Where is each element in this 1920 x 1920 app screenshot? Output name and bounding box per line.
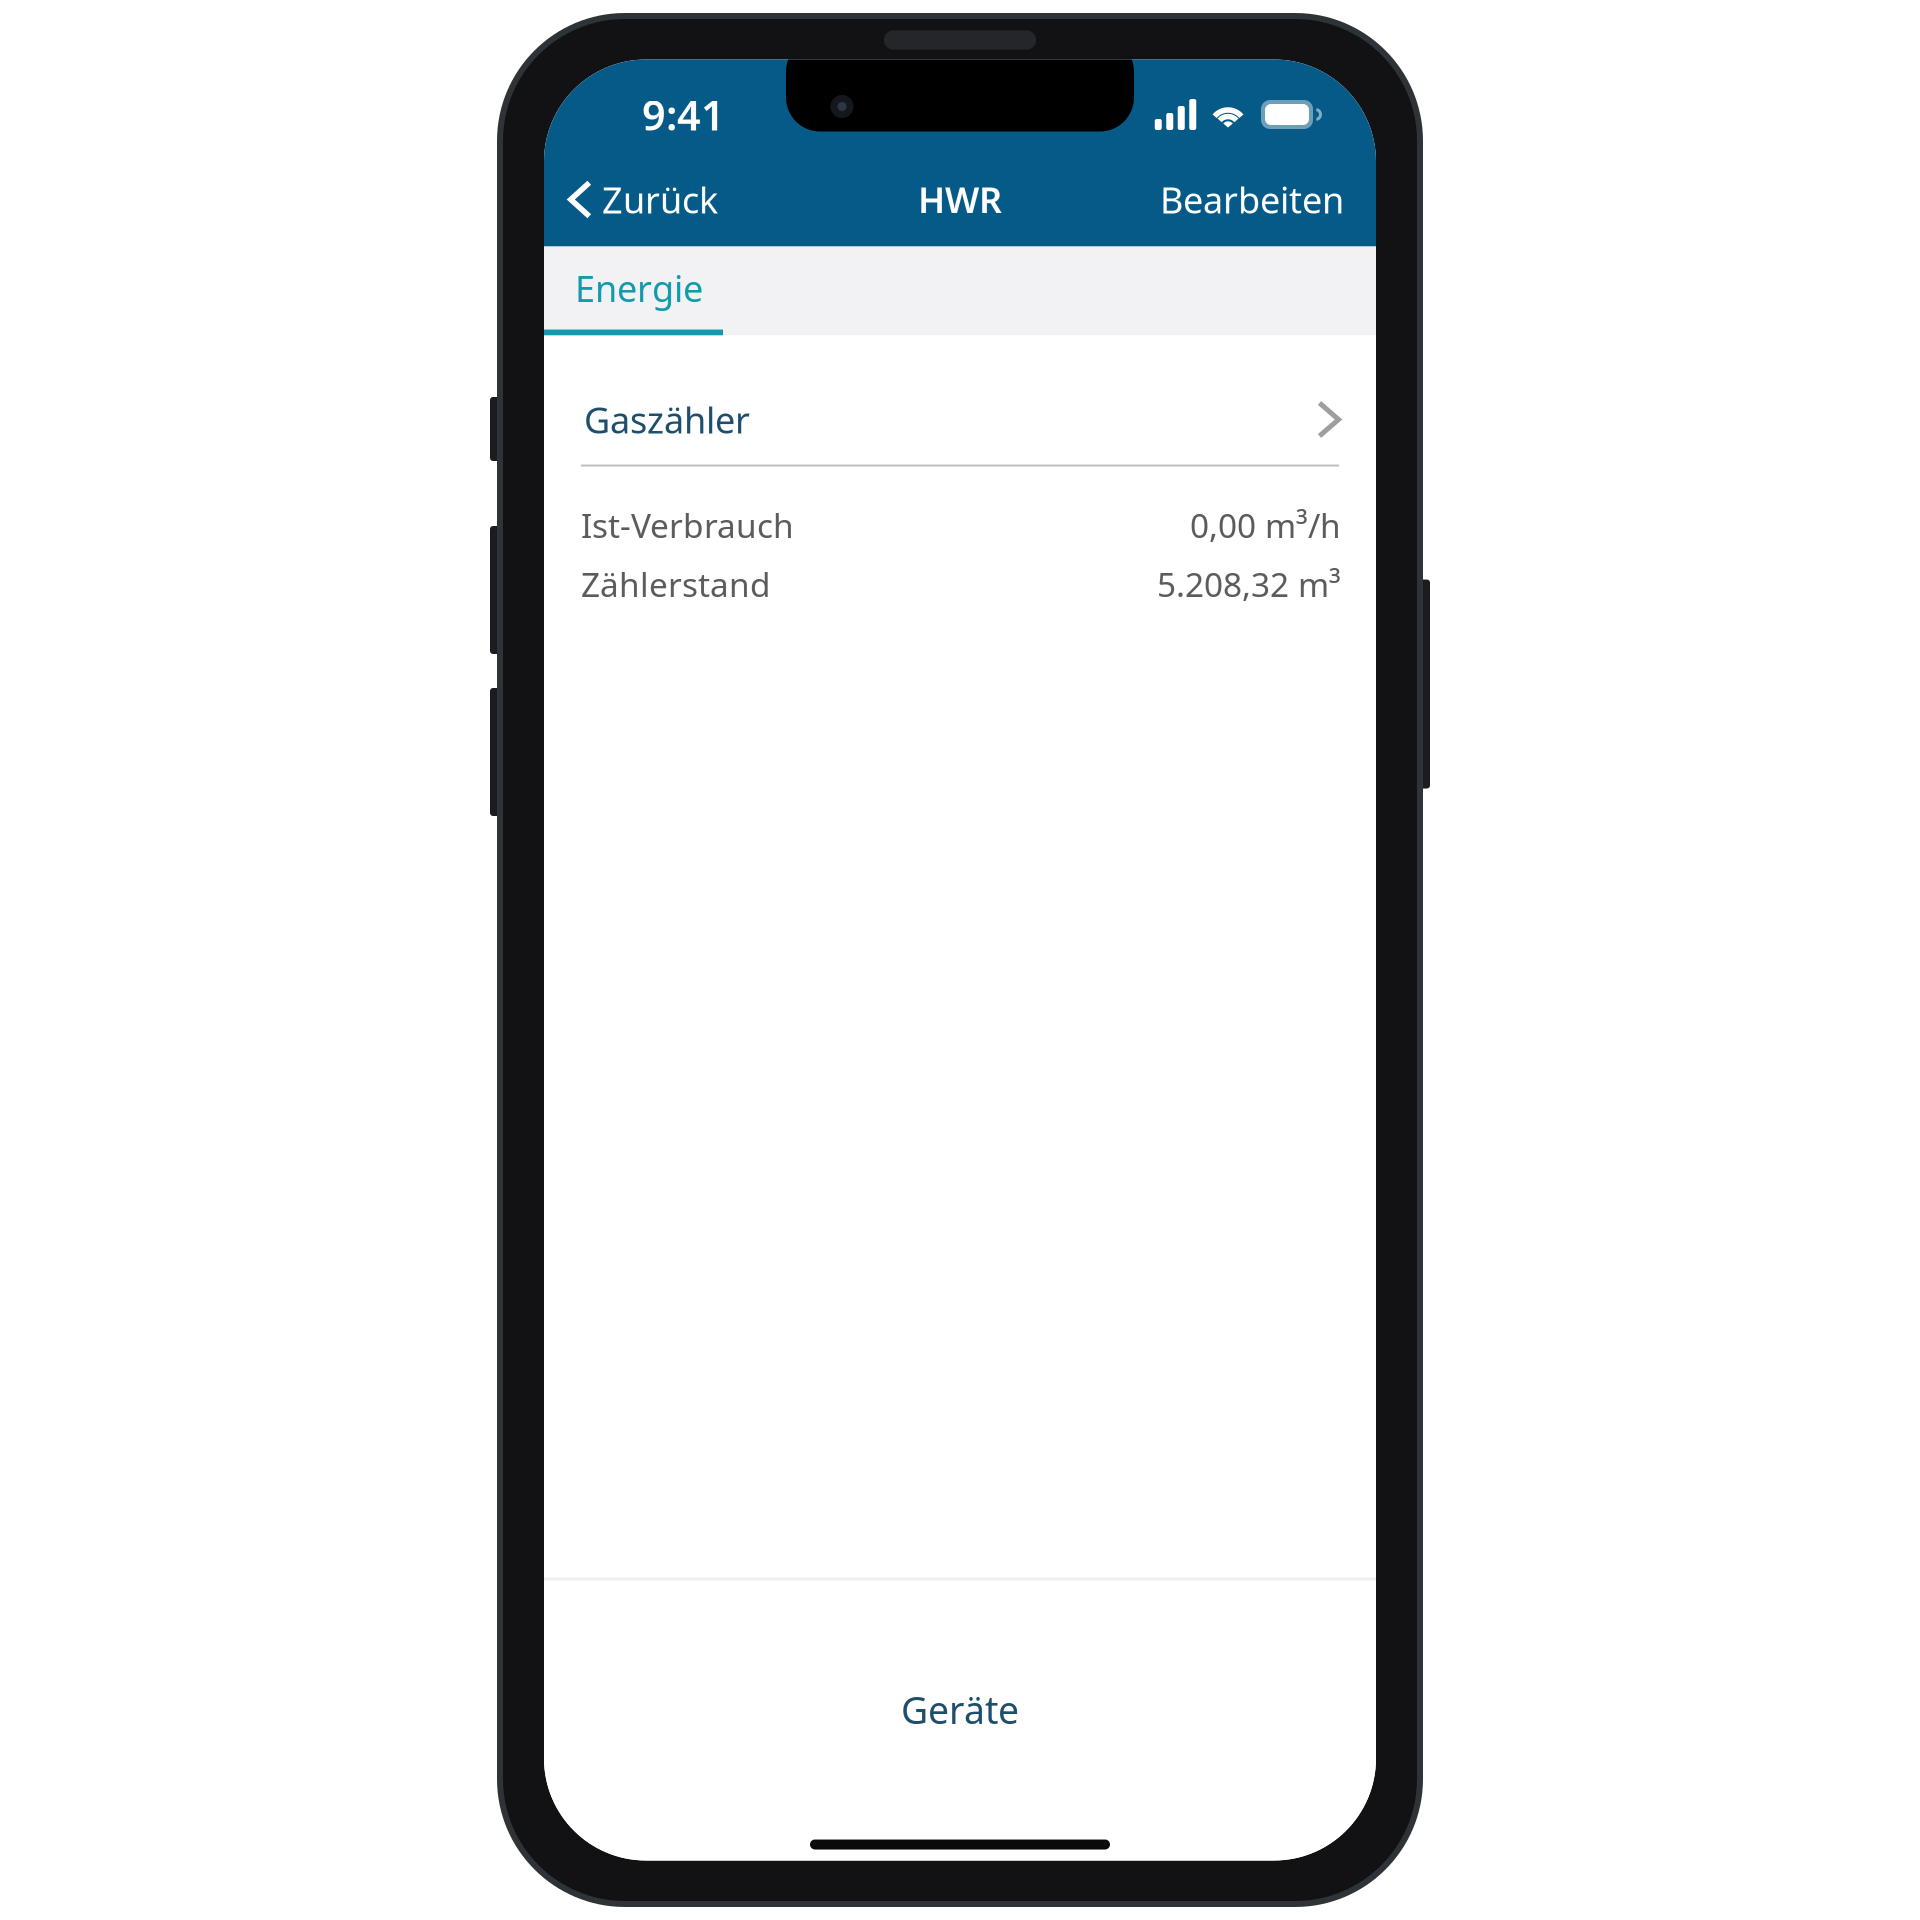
staticText: Zurück bbox=[602, 176, 718, 223]
staticText: Bearbeiten bbox=[1160, 176, 1344, 223]
button[interactable]: Bearbeiten bbox=[1140, 160, 1376, 239]
button[interactable]: Energie bbox=[544, 246, 723, 335]
staticText: Gaszähler bbox=[584, 396, 750, 443]
button[interactable]: Geräte bbox=[544, 1687, 1376, 1731]
staticText: Energie bbox=[575, 264, 703, 312]
staticText: 5.208,32 m³ bbox=[1157, 562, 1341, 606]
staticText: 0,00 m³/h bbox=[1190, 503, 1341, 547]
staticText: 9:41 bbox=[642, 87, 725, 142]
staticText: Geräte bbox=[901, 1685, 1019, 1734]
staticText: Ist-Verbrauch bbox=[581, 503, 794, 547]
staticText: Zählerstand bbox=[581, 562, 771, 606]
button[interactable]: Gaszähler bbox=[544, 389, 1376, 449]
button[interactable]: Zurück bbox=[544, 160, 736, 239]
staticText: HWR bbox=[918, 176, 1002, 223]
